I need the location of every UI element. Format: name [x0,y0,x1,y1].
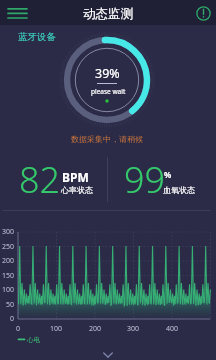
staticText: 心率状态 [61,185,93,195]
staticText: 250 [2,242,15,252]
staticText: please wait [91,87,126,96]
staticText: 150 [2,271,15,281]
staticText: 200 [2,256,15,266]
staticText: 100 [2,285,15,295]
staticText: 心电 [27,336,40,344]
staticText: 动态监测 [83,6,133,22]
staticText: 血氧状态 [163,185,195,195]
staticText: 数据采集中，请稍候 [71,134,143,144]
staticText: 蓝牙设备 [18,31,56,43]
staticText: 50 [6,300,15,310]
staticText: 39% [95,65,120,82]
staticText: 99 [124,155,166,204]
staticText: 0 [16,324,21,334]
staticText: 100 [50,324,63,334]
staticText: 200 [89,324,102,334]
button[interactable]: Info [192,2,214,24]
staticText: 82 [19,155,61,204]
staticText: 300 [127,324,140,334]
staticText: 0 [10,314,15,324]
button[interactable]: Expand [99,346,117,360]
button[interactable]: Menu [4,3,30,23]
staticText: 300 [2,227,15,237]
staticText: 400 [166,324,179,334]
staticText: % [164,169,172,180]
staticText: BPM [62,169,89,185]
